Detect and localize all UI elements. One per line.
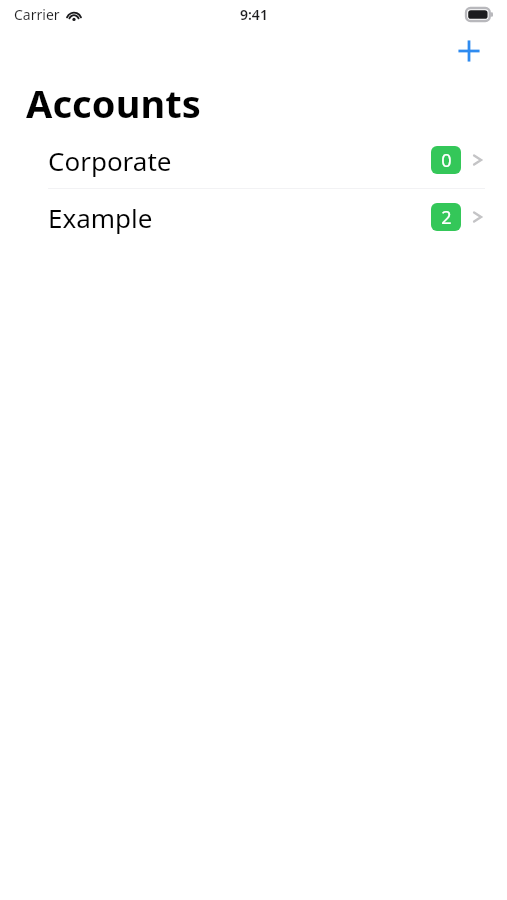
staticText: Example bbox=[48, 200, 153, 235]
staticText: 0 bbox=[441, 148, 452, 173]
staticText: 2 bbox=[441, 205, 452, 230]
staticText: Corporate bbox=[48, 143, 172, 178]
button[interactable]: Add account bbox=[447, 29, 491, 73]
staticText: Accounts bbox=[26, 77, 202, 129]
staticText: Carrier bbox=[14, 5, 60, 24]
button[interactable]: Corporate bbox=[0, 132, 507, 188]
staticText: 9:41 bbox=[240, 5, 268, 24]
button[interactable]: Example bbox=[0, 189, 507, 245]
